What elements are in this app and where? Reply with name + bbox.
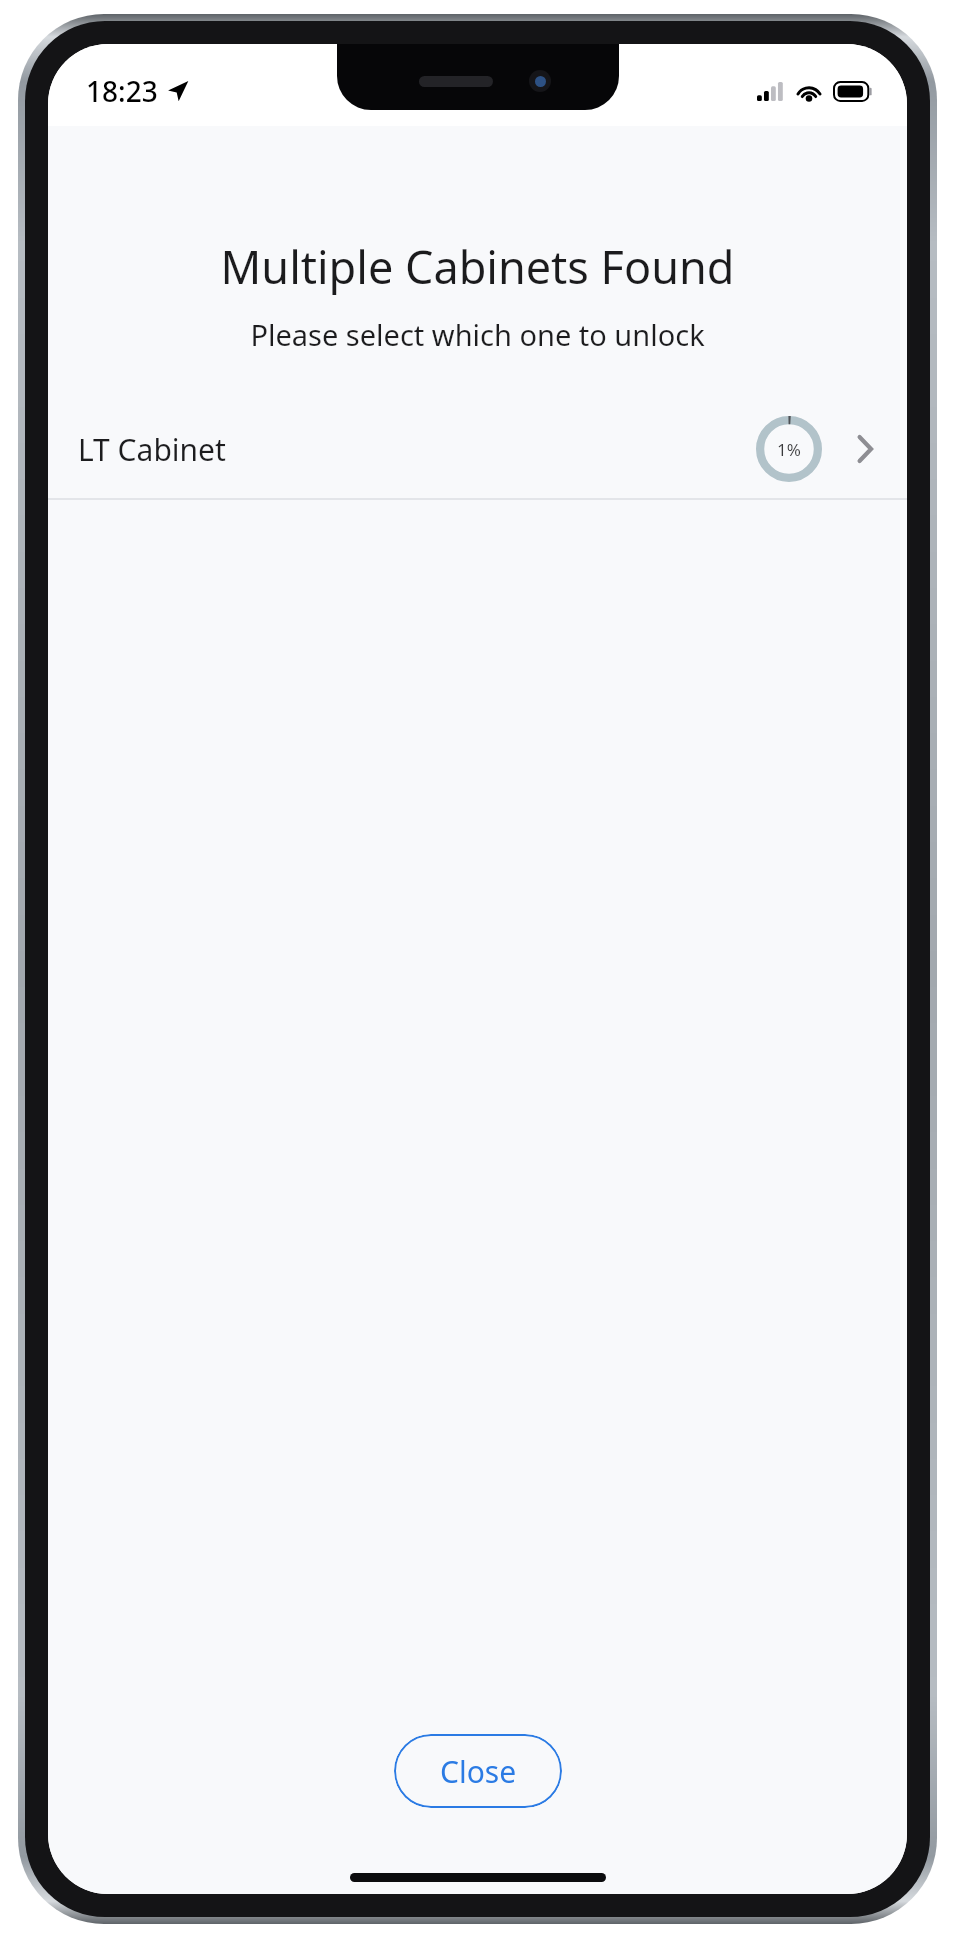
staticText: 18:23 [86,72,158,110]
other: Open LT Cabinet [848,432,882,466]
button[interactable]: Close [394,1734,562,1808]
staticText: Please select which one to unlock [68,315,887,354]
button[interactable]: LT Cabinet [48,400,907,500]
staticText: 1% [777,438,801,461]
staticText: LT Cabinet [78,429,756,470]
staticText: Close [440,1751,517,1792]
staticText: Multiple Cabinets Found [68,236,887,297]
